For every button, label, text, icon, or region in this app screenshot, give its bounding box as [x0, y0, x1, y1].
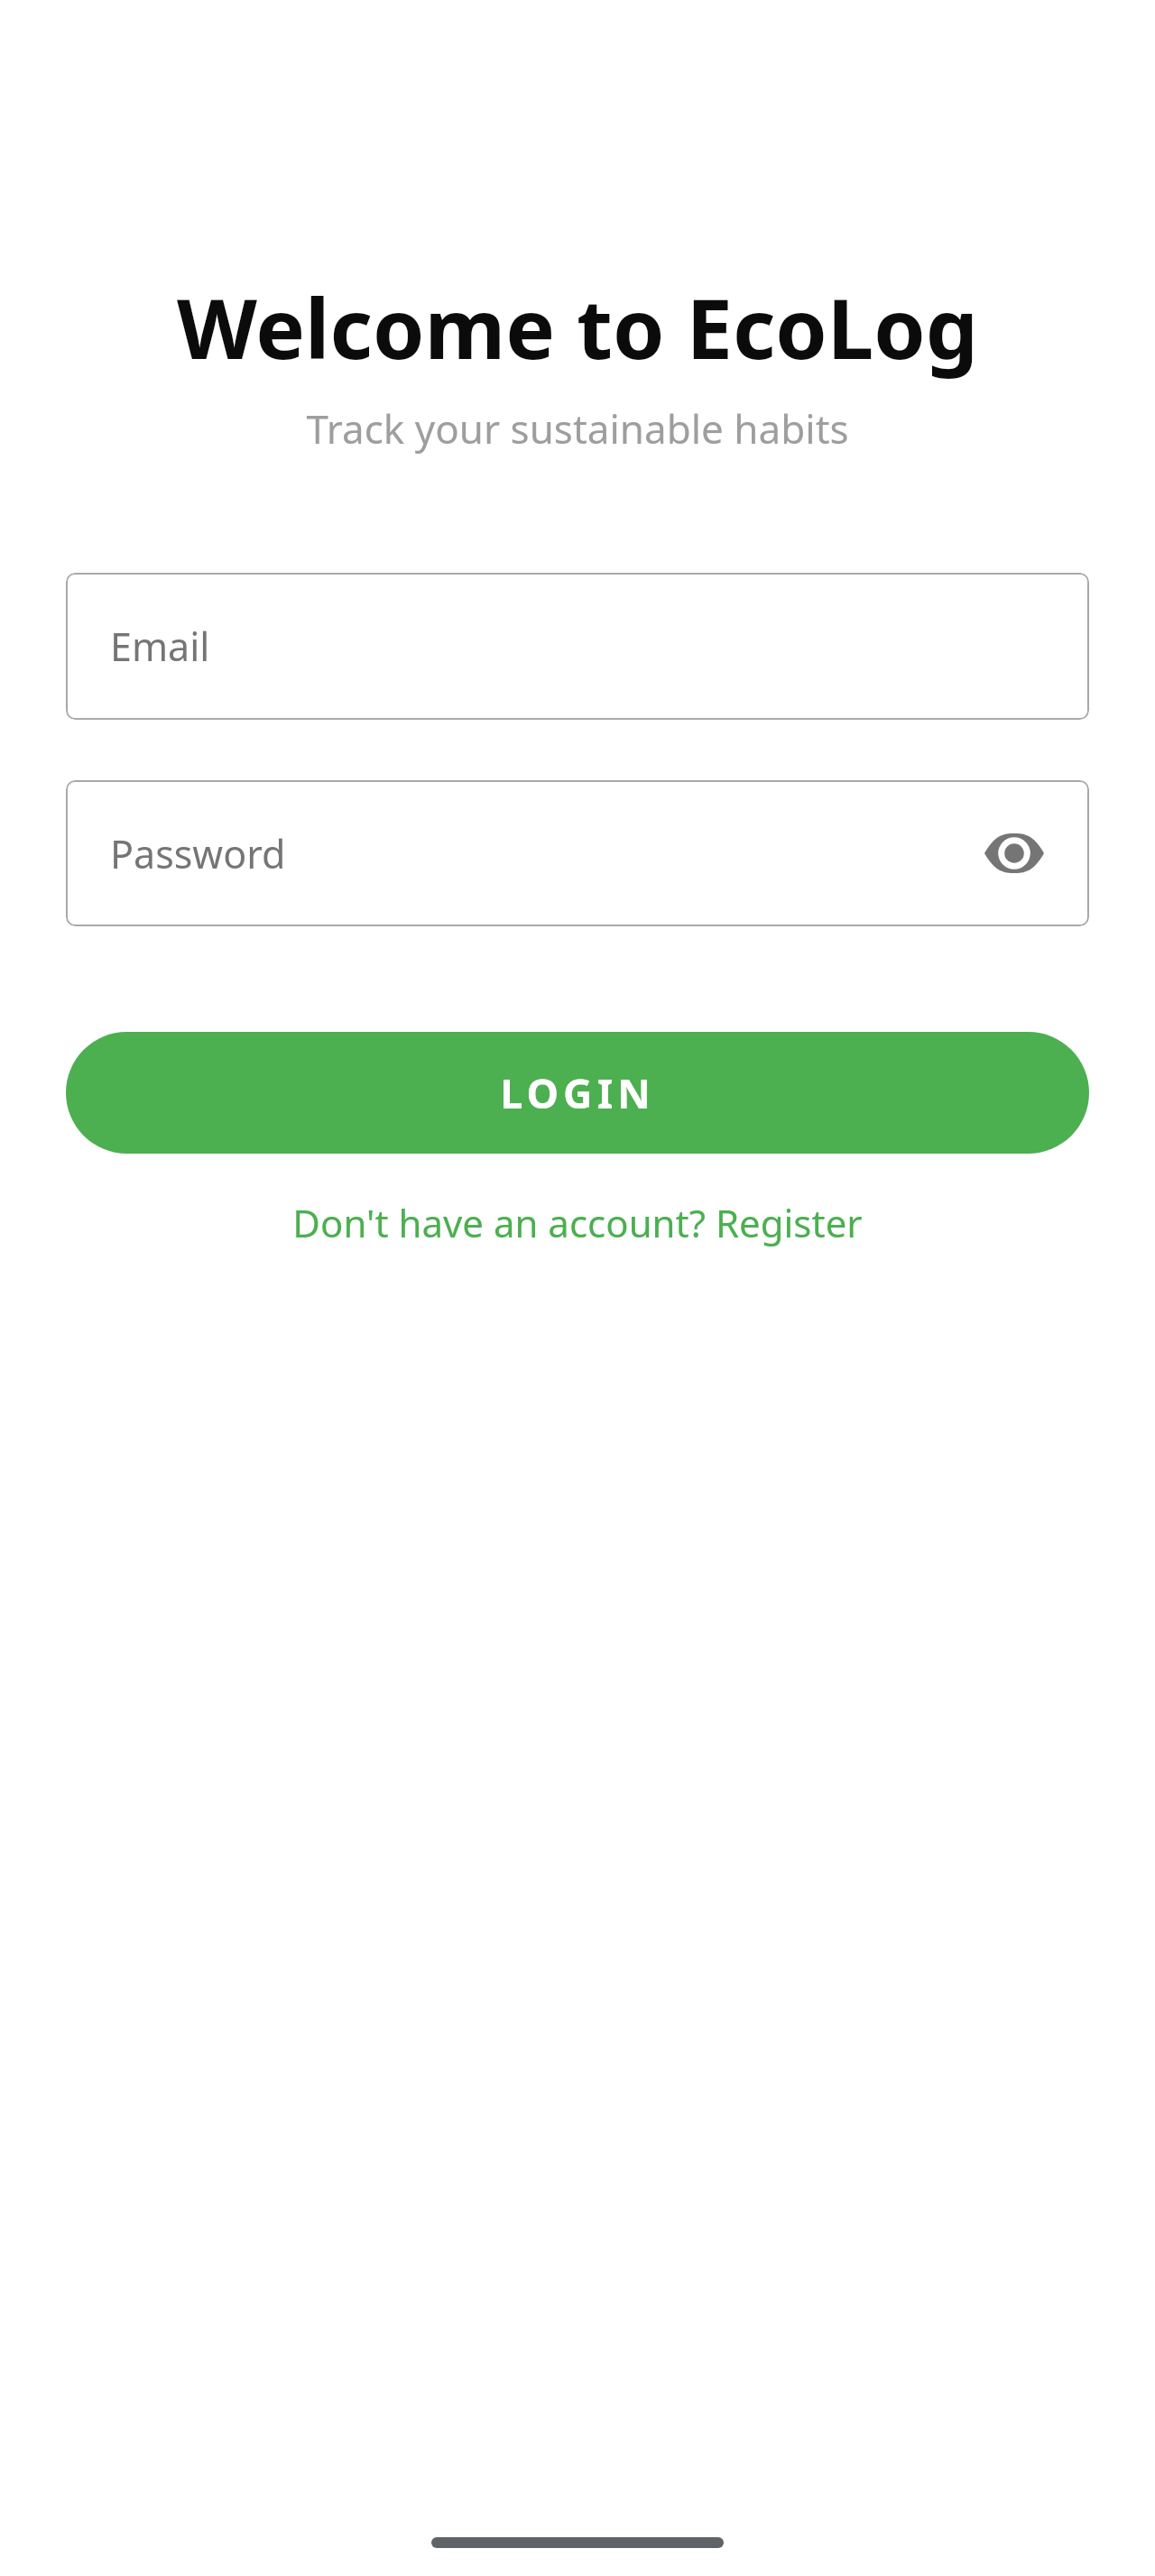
- staticText: Email: [110, 620, 210, 673]
- staticText: Track your sustainable habits: [0, 401, 1155, 455]
- button[interactable]: Email: [66, 573, 1089, 720]
- button[interactable]: Show password: [974, 813, 1055, 894]
- staticText: Don't have an account? Register: [292, 1197, 863, 1248]
- button[interactable]: Password: [66, 780, 1089, 926]
- staticText: LOGIN: [500, 1065, 655, 1120]
- button[interactable]: Don't have an account? Register: [274, 1184, 881, 1261]
- staticText: Welcome to EcoLog: [0, 271, 1155, 383]
- staticText: Password: [110, 827, 286, 880]
- button[interactable]: LOGIN: [66, 1032, 1089, 1154]
